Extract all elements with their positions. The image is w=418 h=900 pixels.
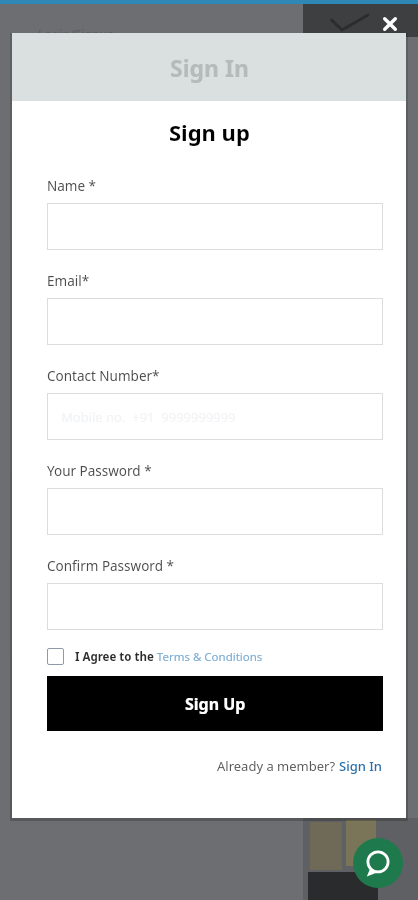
- staticText: Already a member?: [217, 757, 339, 775]
- staticText: Email*: [47, 272, 90, 290]
- staticText: Your Password *: [47, 462, 152, 480]
- button[interactable]: [47, 488, 383, 535]
- staticText: Name *: [47, 177, 97, 195]
- button[interactable]: [47, 203, 383, 250]
- staticText: Contact Number*: [47, 367, 160, 385]
- button[interactable]: [47, 298, 383, 345]
- staticText: Sign In: [170, 52, 249, 83]
- button[interactable]: I Agree to the Terms & Conditions: [47, 648, 263, 665]
- button[interactable]: Sign Up: [47, 676, 383, 731]
- staticText: Sign Up: [185, 693, 246, 715]
- staticText: Sign up: [169, 117, 250, 147]
- button[interactable]: Sign In: [339, 757, 383, 775]
- button[interactable]: Mobile no. +91 9999999999: [47, 393, 383, 440]
- staticText: Confirm Password *: [47, 557, 174, 575]
- button[interactable]: Close: [378, 12, 402, 36]
- staticText: Mobile no. +91 9999999999: [61, 408, 236, 426]
- button[interactable]: Sign In: [12, 33, 406, 101]
- staticText: I Agree to the Terms & Conditions: [75, 649, 263, 665]
- button[interactable]: [47, 583, 383, 630]
- button[interactable]: Chat on WhatsApp: [353, 838, 403, 888]
- staticText: Login/Signup: [38, 26, 115, 42]
